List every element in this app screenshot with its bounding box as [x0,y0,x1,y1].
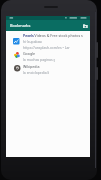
staticText: Bookmarks [10,23,31,28]
staticText: Pexels Vid [23,33,35,38]
staticText: Wikipedia [23,64,40,69]
button[interactable]: Pexels Videos & Free stock photos stock … [6,31,90,48]
button[interactable]: Wikipedia [6,62,90,77]
staticText: la enciclopedia libre [23,70,49,75]
button[interactable]: Google [6,48,90,62]
staticText: Pexels Videos & Free stock photos stock … [23,33,83,38]
staticText: Google [23,51,36,56]
staticText: la muchas paginas googl [23,57,55,62]
staticText: hi (supabase) [23,39,42,44]
button[interactable] [82,23,89,29]
staticText: https://unsplash.com/es • Lar 1.7B it [23,45,71,50]
